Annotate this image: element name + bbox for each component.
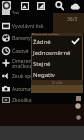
button[interactable]: Zeuk spo (0, 70, 84, 82)
staticText: Tisk (12, 10, 20, 15)
staticText: Negativ (33, 71, 55, 79)
button[interactable]: Cloud sync (70, 2, 80, 12)
button[interactable]: Barevný (0, 32, 84, 44)
button[interactable]: Automatický (0, 83, 84, 95)
staticText: Časové (12, 48, 29, 55)
button[interactable]: Search (55, 1, 64, 10)
staticText: 36/3 (67, 16, 78, 23)
button[interactable]: Jednosměrné (32, 47, 82, 58)
button[interactable]: Žádné (32, 36, 82, 47)
staticText: Zrušit (52, 80, 63, 85)
button[interactable]: 36/3 (53, 13, 84, 33)
staticText: Žádné (33, 38, 51, 46)
button[interactable]: Omezení značkou (0, 57, 84, 69)
button[interactable]: Settings (2, 1, 11, 10)
staticText: Barevný režim (32, 32, 59, 35)
button[interactable]: Vyvolávní tisk (0, 20, 84, 32)
button[interactable]: Crop (37, 2, 45, 10)
staticText: Vyvolávní tisk (12, 23, 44, 30)
staticText: Omezení značkou (12, 58, 33, 69)
staticText: Barevný (12, 35, 31, 42)
staticText: Zeuk spo (12, 73, 34, 80)
staticText: Zkouška (12, 97, 32, 104)
staticText: Automatický (12, 86, 42, 93)
button[interactable]: Časové (0, 45, 84, 57)
button[interactable]: Negativ (32, 69, 82, 80)
button[interactable]: Zkouška (0, 94, 84, 106)
staticText: Jednosměrné (33, 49, 71, 57)
staticText: Stejné (33, 60, 51, 68)
button[interactable]: Stejné (32, 58, 82, 69)
button[interactable]: Gallery (21, 2, 29, 10)
